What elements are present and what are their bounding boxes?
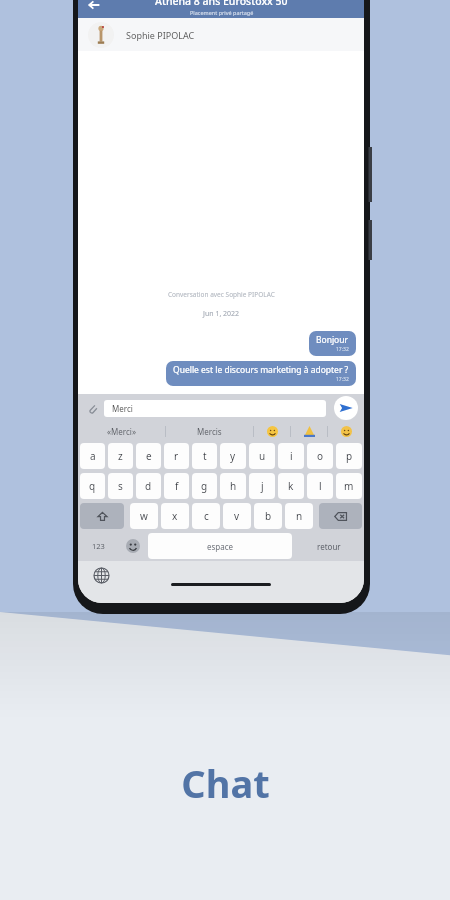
button[interactable]: y [220,443,246,469]
staticText: f [175,479,179,493]
button[interactable]: s [108,473,133,499]
staticText: retour [317,541,341,552]
staticText: Merci [112,403,133,414]
button[interactable]: l [307,473,333,499]
button[interactable]: Merci [104,400,326,417]
button[interactable]: o [307,443,333,469]
button[interactable]: r [164,443,189,469]
staticText: k [288,479,294,493]
button[interactable]: t [192,443,217,469]
staticText: Conversation avec Sophie PIPOLAC [168,290,275,299]
button[interactable]: Change language [92,566,110,584]
button[interactable]: w [130,503,158,529]
staticText: m [344,479,354,493]
button[interactable]: sweat [328,422,364,441]
staticText: 17:32 [336,376,349,383]
button[interactable]: n [285,503,313,529]
button[interactable]: 123 [80,533,117,559]
staticText: r [174,449,179,463]
staticText: 17:32 [336,346,349,353]
button[interactable]: Backspace [319,503,362,529]
staticText: Chat [181,757,270,809]
button[interactable]: Emoji [117,533,148,559]
button[interactable]: a [80,443,105,469]
button[interactable]: Quelle est le discours marketing à adopt… [166,361,356,386]
button[interactable]: h [220,473,246,499]
staticText: t [203,449,207,463]
button[interactable]: u [249,443,275,469]
staticText: d [145,479,152,493]
button[interactable]: b [254,503,282,529]
staticText: g [201,479,208,493]
staticText: o [317,449,324,463]
button[interactable]: x [161,503,189,529]
staticText: c [204,509,209,523]
button[interactable]: i [278,443,304,469]
staticText: Bonjour [316,334,349,346]
button[interactable]: g [192,473,217,499]
staticText: Jun 1, 2022 [203,309,240,319]
staticText: Quelle est le discours marketing à adopt… [173,364,349,376]
staticText: a [90,449,96,463]
staticText: u [259,449,266,463]
button[interactable]: p [336,443,362,469]
button[interactable]: espace [148,533,292,559]
staticText: y [230,449,236,463]
staticText: n [296,509,303,523]
staticText: espace [207,541,234,552]
staticText: «Merci» [107,426,136,437]
staticText: 123 [92,541,105,551]
button[interactable]: f [164,473,189,499]
button[interactable]: d [136,473,161,499]
staticText: h [230,479,237,493]
staticText: Placement privé partagé [190,9,254,16]
staticText: w [140,509,148,523]
staticText: z [118,449,123,463]
button[interactable]: pray [291,422,327,441]
button[interactable]: «Merci» [78,422,165,441]
staticText: q [89,479,96,493]
staticText: e [146,449,152,463]
button[interactable]: k [278,473,304,499]
button[interactable]: retour [296,533,362,559]
button[interactable]: Back [84,0,104,15]
button[interactable]: e [136,443,161,469]
button[interactable]: Mercis [166,422,253,441]
button[interactable]: grin [254,422,290,441]
button[interactable]: c [192,503,220,529]
button[interactable]: Bonjour [309,331,356,356]
button[interactable]: Sophie PIPOLAC [78,18,364,51]
staticText: x [172,509,178,523]
button[interactable]: Attach file [84,400,100,416]
button[interactable]: q [80,473,105,499]
staticText: b [265,509,272,523]
staticText: v [234,509,240,523]
staticText: j [261,479,264,493]
staticText: p [346,449,353,463]
button[interactable]: j [249,473,275,499]
button[interactable]: m [336,473,362,499]
staticText: s [118,479,123,493]
button[interactable]: z [108,443,133,469]
staticText: Sophie PIPOLAC [126,29,195,41]
staticText: Mercis [197,426,222,437]
button[interactable]: v [223,503,251,529]
staticText: Athéna 8 ans Eurostoxx 50 [155,0,288,8]
button[interactable]: Send [334,396,358,420]
staticText: i [290,449,293,463]
staticText: l [319,479,322,493]
button[interactable]: Shift [80,503,124,529]
